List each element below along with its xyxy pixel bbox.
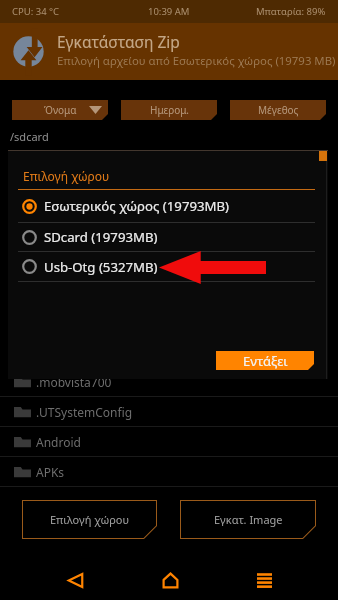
button[interactable]: Android (0, 427, 338, 456)
staticText: .mobvista700 (36, 374, 112, 390)
button[interactable]: SDcard (19793MB) (8, 223, 328, 251)
button[interactable]: Usb-Otg (5327MB) (8, 252, 328, 281)
staticText: 10:39 AM (148, 5, 190, 18)
button[interactable]: Επιλογή χώρου (22, 500, 157, 539)
staticText: Όνομα (44, 103, 77, 117)
staticText: Επιλογή χώρου (23, 168, 110, 184)
button[interactable]: .UTSystemConfig (0, 397, 338, 426)
button[interactable]: Εγκατ. Image (180, 500, 316, 539)
button[interactable]: Μέγεθος (230, 100, 326, 120)
button[interactable]: Recent apps (244, 560, 284, 600)
button[interactable]: APKs (0, 457, 338, 486)
staticText: APKs (36, 464, 65, 480)
button[interactable]: Εντάξει (216, 351, 314, 370)
staticText: Android (36, 434, 81, 450)
button[interactable]: Back (55, 560, 95, 600)
staticText: Ημερομ. (150, 103, 189, 117)
staticText: Μέγεθος (258, 103, 299, 117)
staticText: Εντάξει (243, 352, 288, 370)
staticText: SDcard (19793MB) (44, 228, 158, 246)
button[interactable]: Home (150, 560, 190, 600)
staticText: CPU: 34 °C (12, 5, 60, 18)
staticText: Μπαταρία: 89% (256, 5, 326, 18)
button[interactable]: .mobvista700 (0, 367, 338, 396)
staticText: Εγκατάσταση Zip (57, 31, 180, 52)
staticText: Usb-Otg (5327MB) (44, 258, 158, 276)
staticText: /sdcard (10, 129, 49, 144)
button[interactable]: Εσωτερικός χώρος (19793MB) (8, 190, 328, 222)
staticText: .UTSystemConfig (36, 404, 133, 420)
staticText: Εγκατ. Image (214, 512, 283, 527)
button[interactable]: Ημερομ. (121, 100, 217, 120)
staticText: Εσωτερικός χώρος (19793MB) (44, 197, 230, 215)
button[interactable]: Όνομα (12, 100, 108, 120)
staticText: Επιλογή χώρου (50, 512, 130, 527)
staticText: Επιλογή αρχείου από Εσωτερικός χώρος (19… (57, 53, 336, 69)
